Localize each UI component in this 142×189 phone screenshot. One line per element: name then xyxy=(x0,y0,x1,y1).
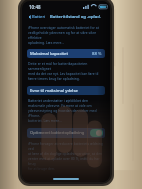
staticText: Dette er et mål for batterikapaciteten s… xyxy=(28,61,104,81)
staticText: 10:48 xyxy=(29,4,41,10)
staticText: Maksimal kapacitet xyxy=(30,51,68,57)
staticText: Evne til maksimal ydelse xyxy=(30,88,78,94)
staticText: iPhone overvåger automatisk batteriet fo… xyxy=(28,25,104,45)
staticText: Batteritilstand og -oplad. xyxy=(50,14,101,20)
button[interactable]: Back to Batteri xyxy=(27,14,47,20)
staticText: 88 % xyxy=(92,51,102,57)
button[interactable]: Optimeret batteriopladning xyxy=(27,128,105,138)
staticText: Batteri xyxy=(32,14,46,20)
button[interactable]: Optimeret batteriopladning, til xyxy=(90,129,103,137)
staticText: iPhone forsøger at reducere batteriets æ… xyxy=(28,141,104,171)
button[interactable]: Evne til maksimal ydelse xyxy=(27,86,105,95)
button[interactable]: Maksimal kapacitet xyxy=(27,49,105,58)
staticText: Batteriet understøtter i øjeblikket den … xyxy=(28,98,104,123)
staticText: Optimeret batteriopladning xyxy=(30,130,85,136)
